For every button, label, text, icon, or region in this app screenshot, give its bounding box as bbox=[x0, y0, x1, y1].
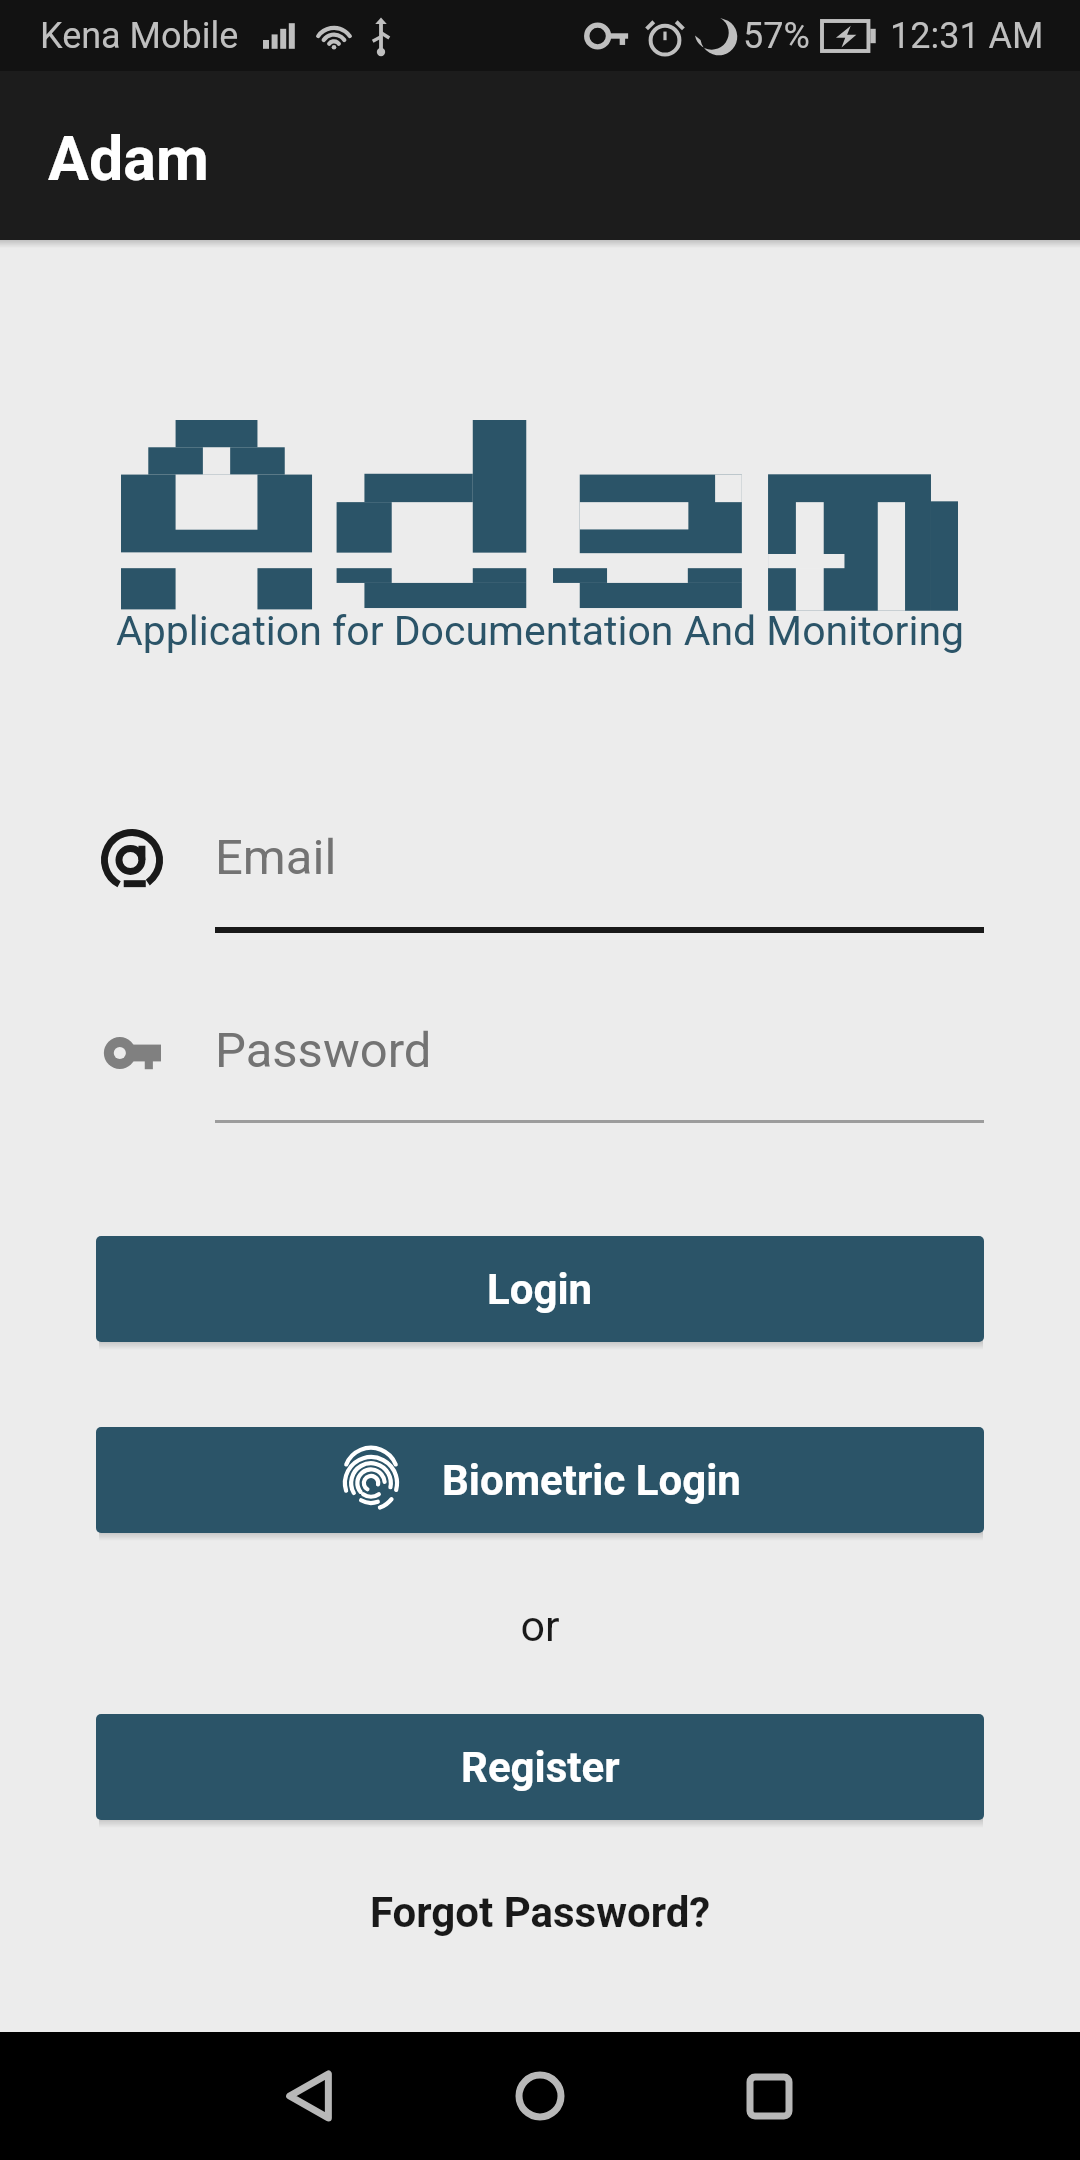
staticText: Register bbox=[461, 1743, 620, 1792]
staticText: Password bbox=[215, 1022, 432, 1079]
button[interactable]: Back bbox=[237, 2032, 381, 2160]
staticText: Login bbox=[487, 1265, 593, 1314]
button[interactable]: Biometric Login bbox=[96, 1427, 984, 1533]
staticText: 57% bbox=[743, 15, 810, 57]
staticText: Email bbox=[215, 829, 337, 886]
staticText: Adam bbox=[48, 123, 209, 194]
button[interactable]: Home bbox=[468, 2032, 612, 2160]
staticText: Forgot Password? bbox=[370, 1888, 711, 1937]
staticText: Application for Documentation And Monito… bbox=[0, 607, 1080, 655]
button[interactable]: Register bbox=[96, 1714, 984, 1820]
button[interactable]: Forgot Password? bbox=[300, 1877, 780, 1947]
staticText: or bbox=[0, 1601, 1080, 1651]
staticText: Kena Mobile bbox=[40, 15, 239, 57]
staticText: Biometric Login bbox=[442, 1456, 741, 1505]
button[interactable]: Recent apps bbox=[697, 2032, 841, 2160]
button[interactable]: Login bbox=[96, 1236, 984, 1342]
staticText: 12:31 AM bbox=[890, 15, 1044, 57]
